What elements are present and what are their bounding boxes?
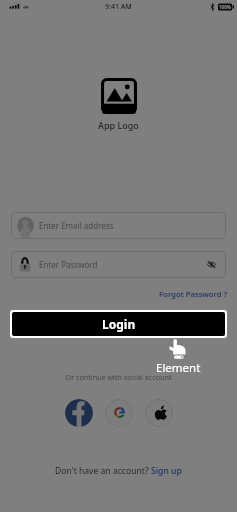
staticText: Don't have an account? <box>55 465 151 477</box>
button[interactable]: Enter Email address <box>11 212 226 239</box>
staticText: Login <box>102 316 136 332</box>
staticText: Login <box>102 316 136 332</box>
staticText: Enter Password <box>39 259 98 270</box>
staticText: Element <box>156 360 201 376</box>
staticText: Or continue with social account <box>0 372 237 382</box>
button[interactable]: Enter Password <box>11 251 226 278</box>
button[interactable]: Forgot Password ? <box>159 289 228 300</box>
staticText: App Logo <box>98 119 139 131</box>
button[interactable]: Sign up <box>151 465 182 477</box>
button[interactable]: Login <box>12 312 225 336</box>
button[interactable]: Login <box>12 312 225 336</box>
staticText: 9:41 AM <box>105 2 132 12</box>
staticText: Enter Email address <box>39 220 114 231</box>
button[interactable]: Continue with Google <box>105 399 133 427</box>
staticText: 100% <box>219 4 231 10</box>
button[interactable]: Continue with Apple <box>145 399 173 427</box>
button[interactable]: Continue with Facebook <box>65 399 93 427</box>
